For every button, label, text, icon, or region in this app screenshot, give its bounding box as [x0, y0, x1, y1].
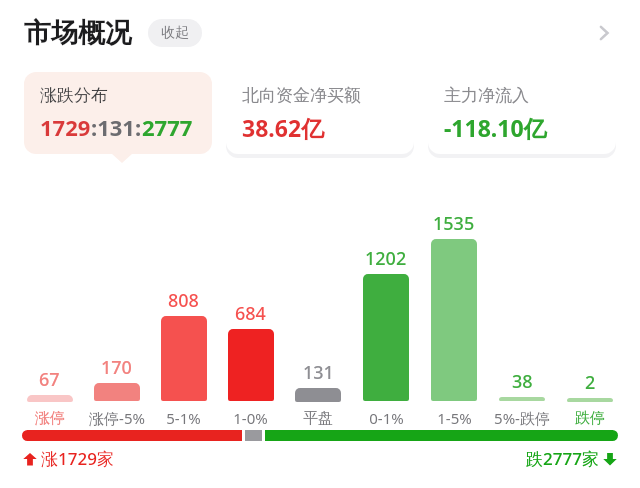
button[interactable]	[567, 398, 613, 402]
staticText: 170	[101, 355, 132, 380]
staticText: 跌停	[575, 409, 605, 428]
staticText: 684	[235, 301, 266, 326]
staticText: 38	[512, 369, 533, 394]
staticText: 2777	[142, 112, 193, 142]
staticText: 1729	[40, 112, 91, 142]
staticText: 涨停-5%	[89, 408, 145, 428]
staticText: 涨跌分布	[40, 85, 108, 106]
staticText: 67	[39, 367, 60, 392]
button[interactable]	[27, 395, 73, 402]
button[interactable]	[94, 383, 140, 401]
button[interactable]	[161, 316, 207, 401]
button[interactable]	[22, 430, 618, 441]
staticText: 38.62亿	[242, 112, 325, 143]
staticText: -118.10亿	[444, 112, 547, 143]
staticText: 市场概况	[24, 16, 132, 50]
staticText: 5%-跌停	[494, 408, 550, 428]
staticText: 跌2777家	[526, 447, 599, 470]
button[interactable]	[295, 388, 341, 402]
button[interactable]	[499, 397, 545, 401]
button[interactable]: 主力净流入	[428, 72, 616, 154]
staticText: 808	[168, 288, 199, 313]
staticText: 1-5%	[437, 408, 472, 428]
staticText: 涨1729家	[41, 447, 114, 470]
staticText: 1202	[365, 246, 407, 271]
button[interactable]: 收起	[148, 19, 202, 47]
button[interactable]: 北向资金净买额	[226, 72, 414, 154]
staticText: 1535	[433, 211, 475, 236]
staticText: 131	[303, 360, 334, 385]
button[interactable]: More	[584, 13, 624, 53]
staticText: 1-0%	[233, 408, 268, 428]
staticText: 主力净流入	[444, 85, 529, 106]
staticText: 0-1%	[369, 408, 404, 428]
staticText: 2	[585, 370, 596, 395]
staticText: 收起	[161, 24, 189, 42]
staticText: 5-1%	[166, 408, 201, 428]
staticText: 北向资金净买额	[242, 85, 361, 106]
button[interactable]	[228, 329, 274, 401]
button[interactable]	[363, 274, 409, 401]
staticText: 涨停	[35, 409, 65, 428]
button[interactable]	[431, 239, 477, 401]
button[interactable]: 涨跌分布	[24, 72, 212, 154]
staticText: :131:	[91, 112, 142, 142]
staticText: 平盘	[303, 409, 333, 428]
